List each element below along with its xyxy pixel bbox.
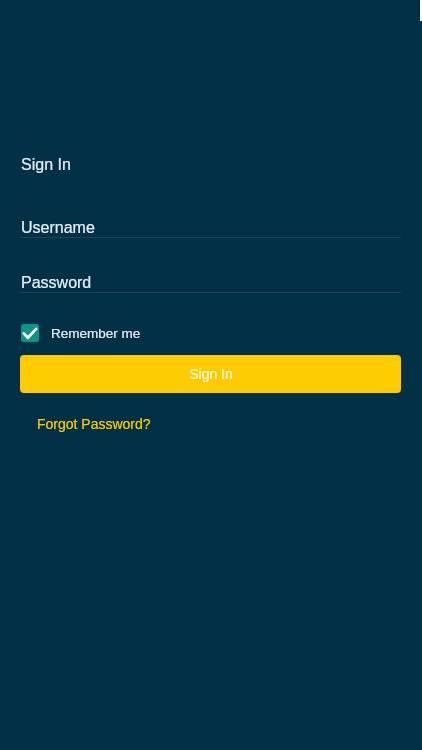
staticText: Password bbox=[21, 274, 92, 292]
staticText: Remember me bbox=[51, 326, 141, 341]
button[interactable] bbox=[20, 213, 401, 240]
staticText: Username bbox=[21, 219, 95, 237]
staticText: Sign In bbox=[189, 366, 233, 382]
button[interactable]: Sign In bbox=[20, 355, 401, 393]
staticText: Sign In bbox=[21, 156, 71, 174]
button[interactable] bbox=[20, 268, 401, 295]
button[interactable]: Forgot Password? bbox=[33, 412, 155, 436]
button[interactable]: Remember me bbox=[21, 322, 141, 344]
staticText: Forgot Password? bbox=[37, 416, 151, 432]
